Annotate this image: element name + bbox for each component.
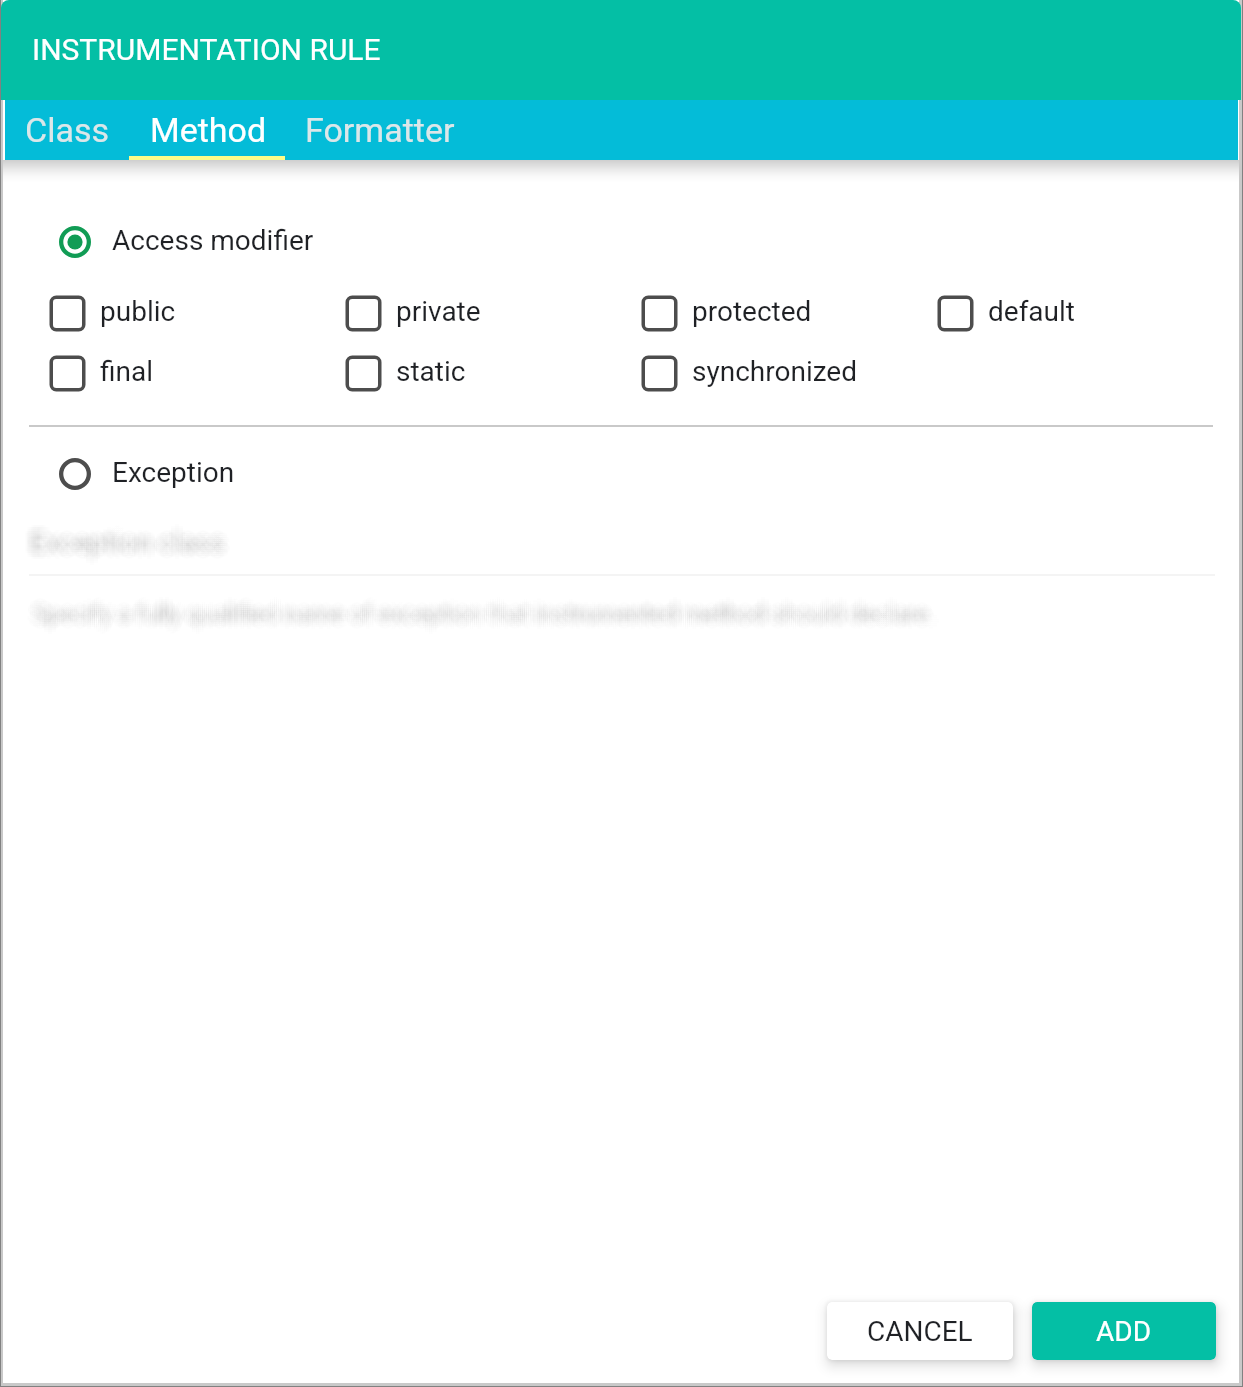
staticText: Specify a fully qualified name of except… [36,599,938,627]
staticText: Exception class [31,529,226,562]
button[interactable]: Access modifier [41,215,314,269]
staticText: Specify a fully qualified name of except… [30,605,932,633]
staticText: Specify a fully qualified name of except… [38,595,940,623]
staticText: Exception class [29,531,224,564]
staticText: Exception class [37,525,232,558]
staticText: Exception class [33,527,228,560]
staticText: Class [25,110,109,150]
button[interactable]: Method [130,100,286,160]
staticText: Specify a fully qualified name of except… [32,593,934,621]
staticText: protected [692,295,812,328]
staticText: Exception class [35,523,230,556]
button[interactable]: synchronized [639,348,858,398]
staticText: Exception class [27,529,222,562]
staticText: Exception class [29,523,224,556]
staticText: Exception class [25,525,220,558]
staticText: public [100,295,176,328]
staticText: Exception class [31,519,226,552]
staticText: Exception class [35,529,230,562]
staticText: Exception class [25,527,220,560]
staticText: Exception [112,456,235,489]
staticText: Specify a fully qualified name of except… [32,603,934,631]
button[interactable]: private [343,288,481,338]
staticText: Exception class [27,531,222,564]
staticText: Formatter [305,110,455,150]
staticText: Exception class [27,525,222,558]
staticText: Exception class [25,531,220,564]
staticText: Specify a fully qualified name of except… [40,599,942,627]
staticText: Specify a fully qualified name of except… [34,597,936,625]
staticText: Specify a fully qualified name of except… [36,603,938,631]
staticText: Specify a fully qualified name of except… [32,601,934,629]
staticText: Specify a fully qualified name of except… [34,599,936,627]
staticText: Exception class [35,521,230,554]
staticText: Method [150,110,267,150]
button[interactable]: ADD [1032,1302,1216,1360]
button[interactable]: INSTRUMENTATION RULE [1,0,1241,100]
button[interactable]: final [47,348,154,398]
staticText: private [396,295,481,328]
staticText: Exception class [31,531,226,564]
staticText: Specify a fully qualified name of except… [26,601,928,629]
staticText: Specify a fully qualified name of except… [34,603,936,631]
staticText: Specify a fully qualified name of except… [28,595,930,623]
button[interactable]: Class [9,100,125,160]
staticText: Exception class [27,527,222,560]
staticText: final [100,355,154,388]
staticText: Specify a fully qualified name of except… [28,597,930,625]
staticText: Exception class [29,529,224,562]
staticText: Specify a fully qualified name of except… [28,599,930,627]
staticText: Exception class [33,531,228,564]
button[interactable]: Exception [41,447,235,501]
staticText: Exception class [33,521,228,554]
staticText: Exception class [29,519,224,552]
staticText: Specify a fully qualified name of except… [38,603,940,631]
staticText: Exception class [35,527,230,560]
staticText: Specify a fully qualified name of except… [34,605,936,633]
staticText: Exception class [33,529,228,562]
staticText: Exception class [31,525,226,558]
staticText: Specify a fully qualified name of except… [30,603,932,631]
staticText: Specify a fully qualified name of except… [28,601,930,629]
staticText: Exception class [31,523,226,556]
staticText: Exception class [29,527,224,560]
staticText: Access modifier [112,224,314,257]
staticText: Specify a fully qualified name of except… [34,601,936,629]
staticText: Exception class [29,533,224,566]
button[interactable]: CANCEL [827,1302,1013,1360]
staticText: Exception class [37,527,232,560]
staticText: Specify a fully qualified name of except… [34,593,936,621]
staticText: Specify a fully qualified name of except… [32,607,934,635]
button[interactable]: Formatter [287,100,472,160]
staticText: Specify a fully qualified name of except… [36,595,938,623]
staticText: Specify a fully qualified name of except… [28,605,930,633]
staticText: Exception class [23,527,218,560]
staticText: Exception class [25,521,220,554]
staticText: Exception class [29,521,224,554]
staticText: Specify a fully qualified name of except… [30,599,932,627]
staticText: Specify a fully qualified name of except… [32,595,934,623]
staticText: Specify a fully qualified name of except… [34,595,936,623]
staticText: Exception class [35,531,230,564]
staticText: Specify a fully qualified name of except… [38,599,940,627]
staticText: Specify a fully qualified name of except… [32,599,934,627]
staticText: ADD [1096,1315,1152,1348]
staticText: INSTRUMENTATION RULE [32,32,381,67]
staticText: Specify a fully qualified name of except… [30,601,932,629]
staticText: Exception class [31,527,226,560]
staticText: Exception class [27,523,222,556]
button[interactable]: protected [639,288,812,338]
staticText: Exception class [29,525,224,558]
staticText: Exception class [33,523,228,556]
button[interactable]: public [47,288,176,338]
button[interactable]: static [343,348,466,398]
button[interactable]: default [935,288,1076,338]
staticText: Specify a fully qualified name of except… [30,597,932,625]
staticText: Specify a fully qualified name of except… [34,607,936,635]
staticText: Specify a fully qualified name of except… [26,599,928,627]
staticText: Exception class [31,521,226,554]
staticText: Exception class [31,533,226,566]
staticText: Exception class [25,529,220,562]
staticText: synchronized [692,355,858,388]
staticText: Specify a fully qualified name of except… [38,605,940,633]
